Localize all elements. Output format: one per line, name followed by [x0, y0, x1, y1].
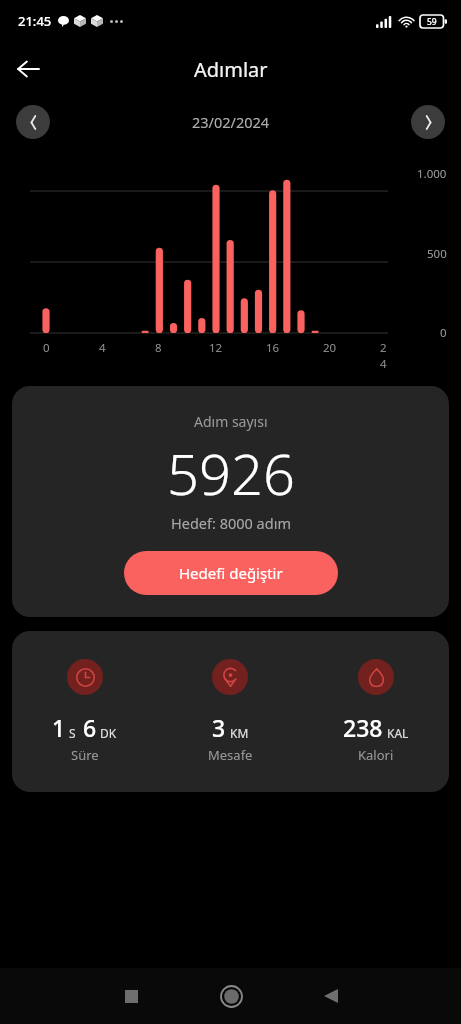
staticText: KAL — [387, 725, 409, 741]
staticText: 0 — [440, 325, 447, 341]
staticText: 5926 — [167, 435, 295, 511]
staticText: KM — [230, 725, 249, 741]
button[interactable]: Back — [5, 46, 51, 92]
staticText: Adım sayısı — [194, 412, 268, 431]
button[interactable]: Back — [281, 968, 381, 1024]
button[interactable]: Hedefi değiştir — [124, 551, 338, 595]
staticText: 238 — [343, 712, 383, 743]
staticText: 20 — [323, 340, 337, 356]
staticText: 8 — [155, 340, 162, 356]
staticText: 1 — [52, 712, 66, 743]
staticText: 12 — [209, 340, 223, 356]
staticText: Mesafe — [208, 746, 253, 764]
staticText: 3 — [212, 712, 226, 743]
staticText: Kalori — [358, 746, 394, 764]
staticText: 23/02/2024 — [192, 112, 270, 132]
staticText: 500 — [427, 246, 447, 262]
staticText: S — [69, 725, 76, 741]
staticText: Adımlar — [194, 56, 268, 83]
button[interactable]: Next day — [411, 105, 445, 139]
staticText: 59 — [427, 16, 437, 28]
button[interactable]: Previous day — [16, 105, 50, 139]
staticText: 0 — [43, 340, 50, 356]
button[interactable]: 3 — [157, 659, 303, 764]
staticText: 4 — [99, 340, 106, 356]
staticText: Süre — [71, 746, 99, 764]
staticText: DK — [100, 725, 117, 741]
staticText: 16 — [266, 340, 280, 356]
staticText: Hedef: 8000 adım — [171, 513, 291, 533]
staticText: 21:45 — [18, 12, 52, 30]
staticText: 1.000 — [417, 166, 447, 182]
staticText: 6 — [83, 712, 97, 743]
button[interactable]: 1 — [12, 659, 157, 764]
staticText: Hedefi değiştir — [179, 563, 283, 583]
button[interactable]: 238 — [303, 659, 449, 764]
button[interactable]: Home — [181, 968, 281, 1024]
button[interactable]: Recent apps — [81, 968, 181, 1024]
